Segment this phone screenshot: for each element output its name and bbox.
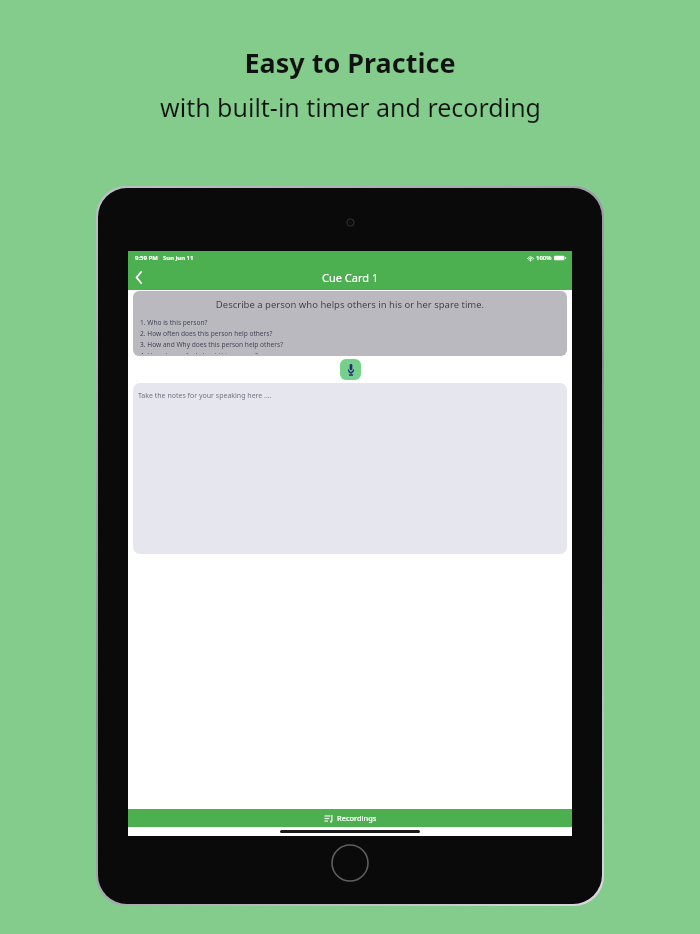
- staticText: 4. How do you feel about this person ?: [140, 351, 259, 354]
- staticText: Take the notes for your speaking here ..…: [138, 391, 272, 401]
- button[interactable]: Home: [331, 844, 369, 882]
- button[interactable]: Describe a person who helps others in hi…: [133, 291, 567, 356]
- button[interactable]: Recordings: [128, 809, 572, 827]
- staticText: Cue Card 1: [322, 270, 379, 285]
- staticText: 3. How and Why does this person help oth…: [140, 340, 283, 349]
- staticText: 1. Who is this person?: [140, 318, 208, 327]
- button[interactable]: Record: [340, 359, 361, 380]
- staticText: Recordings: [337, 813, 377, 823]
- staticText: with built-in timer and recording: [160, 90, 541, 124]
- staticText: Easy to Practice: [244, 44, 456, 81]
- staticText: Sun Jun 11: [163, 254, 194, 262]
- button[interactable]: Back: [128, 266, 150, 288]
- staticText: 2. How often does this person help other…: [140, 329, 273, 338]
- staticText: 100%: [536, 254, 552, 262]
- staticText: Describe a person who helps others in hi…: [133, 298, 567, 311]
- button[interactable]: Take the notes for your speaking here ..…: [133, 383, 567, 554]
- staticText: 9:59 PM: [135, 254, 158, 262]
